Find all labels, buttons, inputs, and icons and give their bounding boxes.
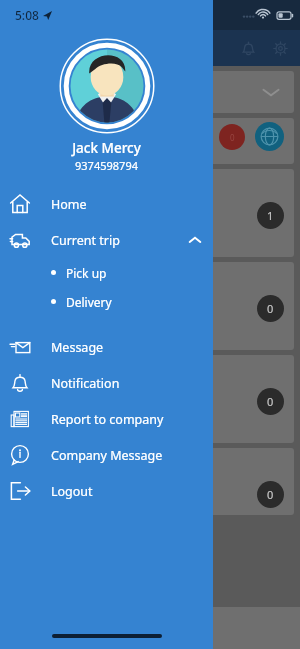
staticText: 0: [230, 132, 235, 143]
staticText: f booking: [16, 208, 257, 223]
button[interactable]: Complete: [69, 362, 128, 381]
staticText: 0: [267, 487, 274, 502]
staticText: f booking: [16, 487, 257, 502]
staticText: Complete: [79, 459, 118, 471]
staticText: Complete: [79, 273, 118, 285]
button[interactable]: cation: [6, 355, 294, 443]
button[interactable]: 0: [219, 124, 245, 150]
staticText: cation: [26, 459, 51, 471]
staticText: Cancelled: [138, 620, 193, 636]
button[interactable]: cation: [16, 362, 61, 381]
button[interactable]: cation: [6, 169, 294, 257]
button[interactable]: cation: [16, 269, 61, 288]
button[interactable]: Complete: [69, 455, 128, 474]
button[interactable]: Current trip: [0, 222, 213, 258]
button[interactable]: cation: [6, 262, 294, 350]
staticText: es 1643.5: [16, 421, 68, 436]
button[interactable]: [6, 71, 294, 113]
staticText: 9374598794: [0, 158, 213, 173]
button[interactable]: Map: [255, 122, 284, 151]
staticText: Notification: [51, 375, 213, 392]
staticText: es 0.6: [16, 235, 49, 250]
button[interactable]: cation: [16, 176, 61, 195]
button[interactable]: Message: [0, 329, 213, 365]
staticText: 5:08: [15, 7, 39, 23]
staticText: Current trip: [51, 232, 188, 249]
button[interactable]: Report to company: [0, 401, 213, 437]
staticText: Home: [51, 196, 213, 213]
button[interactable]: Company Message: [0, 437, 213, 473]
staticText: Message: [51, 339, 213, 356]
button[interactable]: Notification: [0, 365, 213, 401]
button[interactable]: Settings: [264, 32, 296, 64]
staticText: f booking: [16, 394, 257, 409]
staticText: f booking: [16, 301, 257, 316]
button[interactable]: Delivery: [0, 287, 213, 316]
staticText: es 1149.2: [16, 328, 68, 343]
staticText: Jack Mercy: [0, 139, 213, 157]
button[interactable]: Complete: [69, 269, 128, 288]
button[interactable]: cation: [6, 448, 294, 515]
button[interactable]: Pick up: [0, 258, 213, 287]
staticText: Pick up: [66, 265, 107, 281]
staticText: Delivery: [66, 294, 112, 310]
button[interactable]: cation: [16, 455, 61, 474]
staticText: 1: [267, 208, 274, 223]
staticText: Report to company: [51, 411, 213, 428]
button[interactable]: Logout: [0, 473, 213, 509]
button[interactable]: Home: [0, 186, 213, 222]
staticText: 0: [267, 301, 274, 316]
button[interactable]: Notifications: [232, 32, 264, 64]
staticText: 0: [267, 394, 274, 409]
staticText: Company Message: [51, 447, 213, 464]
staticText: Logout: [51, 483, 213, 500]
